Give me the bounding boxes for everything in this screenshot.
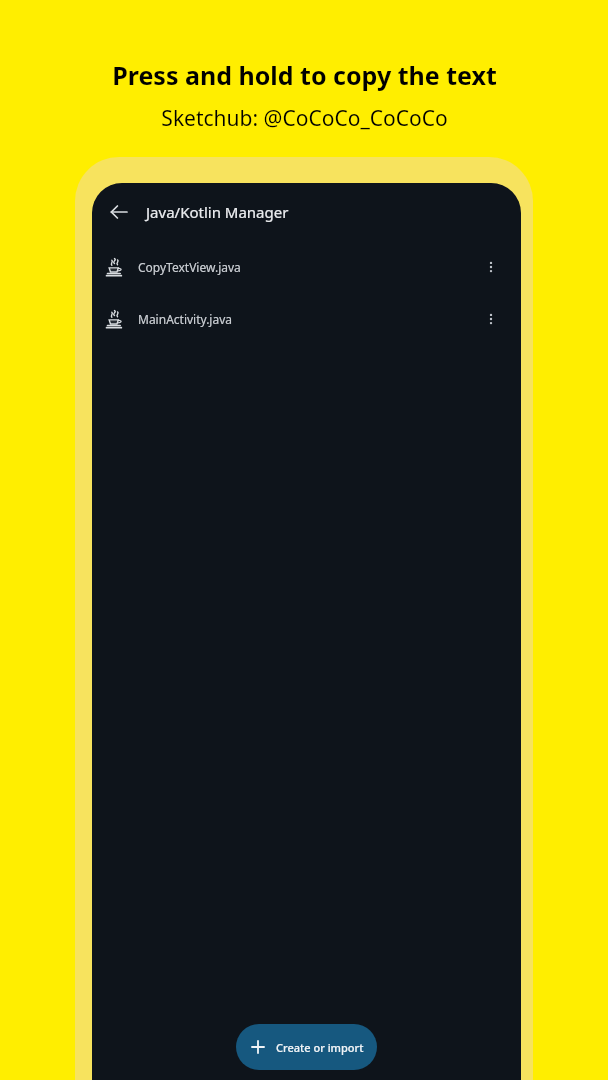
button[interactable]: More options — [472, 248, 510, 286]
staticText: Java/Kotlin Manager — [146, 202, 289, 222]
button[interactable]: MainActivity.java — [92, 293, 521, 345]
staticText: CopyTextView.java — [138, 259, 241, 275]
staticText: Create or import — [276, 1040, 364, 1055]
button[interactable]: Back — [98, 191, 140, 233]
button[interactable]: More options — [472, 300, 510, 338]
button[interactable]: Create or import — [236, 1024, 377, 1070]
staticText: Press and hold to copy the text — [112, 58, 497, 92]
staticText: MainActivity.java — [138, 311, 233, 327]
staticText: Sketchub: @CoCoCo_CoCoCo — [161, 104, 448, 133]
button[interactable]: CopyTextView.java — [92, 241, 521, 293]
